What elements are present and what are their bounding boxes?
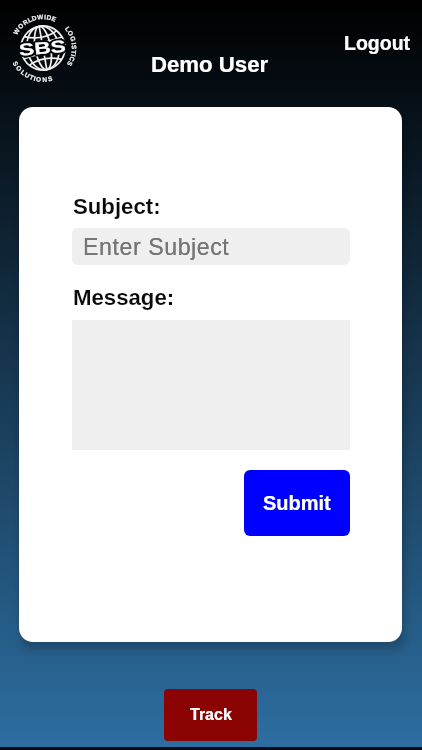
button[interactable]: Track: [164, 689, 257, 741]
staticText: Track: [190, 706, 232, 724]
staticText: Enter Subject: [83, 234, 230, 260]
button[interactable]: Logout: [337, 27, 418, 59]
staticText: Demo User: [151, 52, 269, 77]
staticText: Submit: [263, 492, 331, 514]
staticText: Subject:: [73, 194, 161, 219]
button[interactable]: Enter Subject: [72, 228, 350, 265]
button[interactable]: Submit: [244, 470, 350, 536]
staticText: Message:: [73, 285, 175, 310]
staticText: Logout: [344, 32, 411, 54]
other: SBS Worldwide Logistics Solutions: [4, 9, 82, 87]
staticText: Enter Subject: [83, 234, 230, 260]
